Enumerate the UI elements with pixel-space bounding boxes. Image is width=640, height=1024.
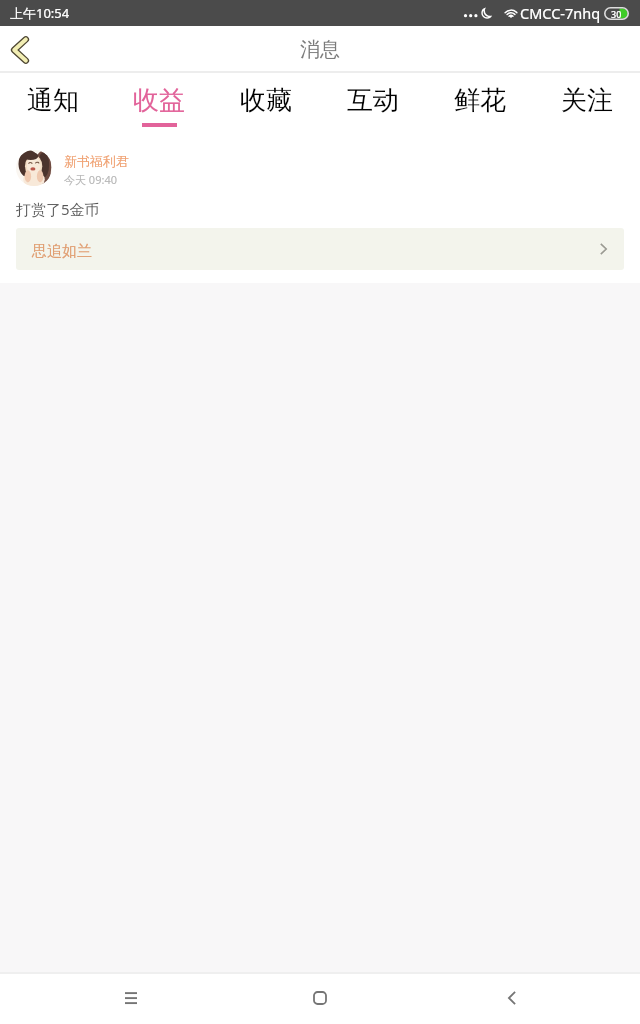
staticText: 新书福利君 — [64, 153, 129, 169]
button[interactable]: 互动 — [319, 73, 426, 129]
button[interactable]: Back — [0, 26, 40, 73]
button[interactable]: 收藏 — [212, 73, 319, 129]
staticText: 30 — [611, 8, 622, 20]
button[interactable]: 鲜花 — [426, 73, 533, 129]
button[interactable]: 收益 — [106, 73, 212, 129]
button[interactable]: 思追如兰 — [16, 228, 624, 270]
button[interactable]: Back — [464, 973, 560, 1023]
staticText: 消息 — [300, 37, 340, 62]
staticText: 今天 09:40 — [64, 172, 117, 187]
button[interactable]: Menu — [83, 973, 179, 1023]
staticText: 打赏了5金币 — [16, 199, 100, 219]
staticText: 上午10:54 — [10, 4, 70, 22]
staticText: 通知 — [27, 84, 79, 117]
staticText: 收益 — [133, 84, 185, 117]
button[interactable]: 关注 — [533, 73, 640, 129]
staticText: 互动 — [347, 84, 399, 117]
button[interactable]: 新书福利君 — [0, 150, 640, 187]
button[interactable]: 通知 — [0, 73, 106, 129]
button[interactable]: Home — [272, 973, 368, 1023]
staticText: 收藏 — [240, 84, 292, 117]
staticText: 思追如兰 — [32, 242, 92, 261]
staticText: 鲜花 — [454, 84, 506, 117]
staticText: 关注 — [561, 84, 613, 117]
staticText: CMCC-7nhq — [520, 3, 601, 23]
